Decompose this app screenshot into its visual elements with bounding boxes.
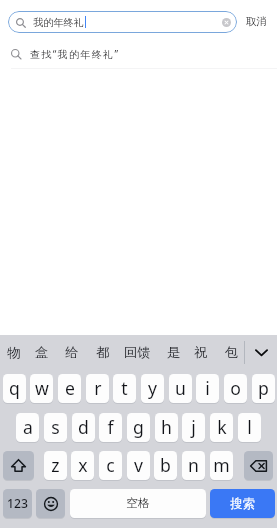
button[interactable]: 搜索 [210, 489, 275, 518]
staticText: y [148, 376, 157, 400]
staticText: w [35, 376, 49, 400]
staticText: q [9, 376, 20, 400]
staticText: i [205, 376, 210, 400]
button[interactable]: u [169, 374, 192, 403]
button[interactable]: e [58, 374, 81, 403]
button[interactable]: n [182, 451, 205, 480]
button[interactable]: j [182, 413, 205, 442]
button[interactable]: f [99, 413, 122, 442]
staticText: e [65, 376, 75, 400]
staticText: v [134, 453, 143, 477]
button[interactable]: t [113, 374, 136, 403]
button[interactable]: 给 [65, 341, 79, 364]
button[interactable]: Clear text [222, 18, 231, 27]
button[interactable]: w [30, 374, 53, 403]
button[interactable]: v [127, 451, 150, 480]
staticText: x [78, 453, 88, 477]
staticText: r [94, 376, 102, 400]
staticText: p [258, 376, 269, 400]
button[interactable]: 是 [167, 341, 181, 364]
button[interactable]: g [127, 413, 150, 442]
button[interactable]: z [44, 451, 67, 480]
button[interactable]: 回馈 [124, 341, 151, 364]
button[interactable]: 物 [7, 341, 21, 364]
button[interactable]: h [155, 413, 178, 442]
staticText: 盒 [35, 344, 49, 361]
staticText: 我的年终礼 [33, 16, 84, 29]
staticText: 123 [7, 495, 28, 512]
staticText: d [78, 415, 89, 439]
button[interactable]: 盒 [35, 341, 49, 364]
button[interactable]: Emoji [36, 489, 65, 518]
staticText: 祝 [194, 344, 208, 361]
staticText: 查找“我的年终礼” [30, 47, 120, 61]
button[interactable]: 123 [3, 489, 32, 518]
button[interactable]: Backspace [244, 451, 273, 480]
button[interactable]: k [210, 413, 233, 442]
button[interactable]: q [3, 374, 26, 403]
staticText: j [191, 415, 196, 439]
staticText: 包 [225, 344, 239, 361]
button[interactable]: p [252, 374, 275, 403]
staticText: 物 [7, 344, 21, 361]
staticText: 都 [96, 344, 110, 361]
button[interactable]: Shift [3, 451, 34, 480]
button[interactable]: i [196, 374, 219, 403]
staticText: o [230, 376, 241, 400]
button[interactable]: 空格 [70, 489, 206, 518]
button[interactable]: 祝 [194, 341, 208, 364]
staticText: a [23, 415, 33, 439]
button[interactable]: b [154, 451, 177, 480]
staticText: 给 [65, 344, 79, 361]
staticText: u [175, 376, 186, 400]
staticText: c [106, 453, 115, 477]
staticText: f [107, 415, 114, 439]
staticText: n [188, 453, 199, 477]
staticText: 是 [167, 344, 181, 361]
staticText: b [160, 453, 171, 477]
button[interactable]: y [141, 374, 164, 403]
staticText: l [247, 415, 252, 439]
staticText: m [213, 453, 230, 477]
staticText: 取消 [246, 15, 268, 28]
staticText: 搜索 [230, 496, 255, 511]
button[interactable]: l [238, 413, 261, 442]
button[interactable]: 查找“我的年终礼” [0, 42, 277, 65]
staticText: 空格 [126, 496, 150, 511]
staticText: 回馈 [124, 344, 151, 361]
button[interactable]: m [210, 451, 233, 480]
button[interactable]: 取消 [246, 15, 268, 28]
staticText: t [121, 376, 128, 400]
button[interactable]: a [16, 413, 39, 442]
button[interactable]: 我的年终礼 [8, 11, 237, 33]
button[interactable]: d [72, 413, 95, 442]
staticText: z [51, 453, 60, 477]
staticText: g [133, 415, 144, 439]
button[interactable]: s [44, 413, 67, 442]
button[interactable]: r [86, 374, 109, 403]
button[interactable]: o [224, 374, 247, 403]
button[interactable]: Hide keyboard [246, 338, 277, 367]
staticText: h [161, 415, 172, 439]
staticText: k [217, 415, 227, 439]
button[interactable]: x [71, 451, 94, 480]
staticText: s [51, 415, 60, 439]
button[interactable]: 包 [225, 341, 239, 364]
button[interactable]: 都 [96, 341, 110, 364]
button[interactable]: c [99, 451, 122, 480]
